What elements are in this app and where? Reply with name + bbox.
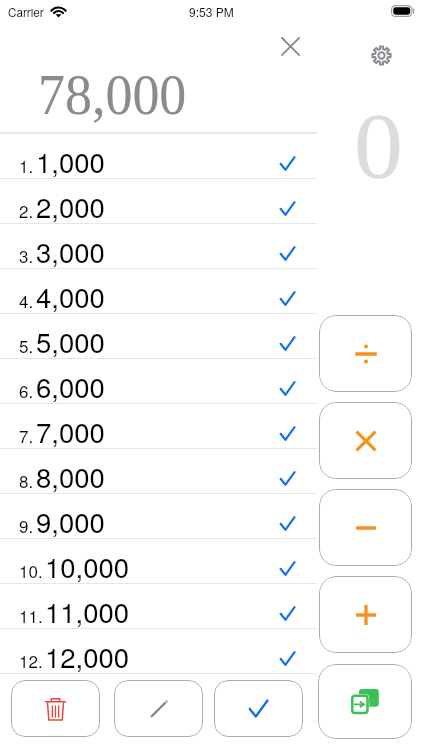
staticText: 0 [354, 93, 403, 197]
staticText: 5. [19, 333, 34, 357]
button[interactable]: Delete [11, 680, 100, 737]
staticText: 3,000 [36, 231, 105, 270]
staticText: 8,000 [36, 456, 105, 495]
button[interactable]: 8. [0, 449, 317, 494]
button[interactable]: 4. [0, 269, 317, 314]
button[interactable]: 5. [0, 314, 317, 359]
button[interactable]: Divide [319, 315, 412, 392]
staticText: 11,000 [45, 591, 130, 630]
staticText: 4,000 [36, 276, 105, 315]
button[interactable]: Close [272, 28, 308, 64]
staticText: 12,000 [45, 636, 130, 675]
button[interactable]: Settings [363, 37, 399, 73]
button[interactable]: Move [318, 664, 412, 739]
staticText: 3. [19, 243, 34, 267]
staticText: 9:53 PM [189, 3, 234, 20]
staticText: 8. [19, 468, 34, 492]
button[interactable]: Edit [114, 680, 203, 737]
staticText: 2,000 [36, 186, 105, 225]
button[interactable]: Multiply [319, 402, 412, 479]
button[interactable]: 7. [0, 404, 317, 449]
staticText: 2. [19, 198, 34, 222]
staticText: 6,000 [36, 366, 105, 405]
staticText: 6. [19, 378, 34, 402]
button[interactable]: Confirm [214, 680, 303, 737]
staticText: 1,000 [36, 141, 105, 180]
button[interactable]: 12. [0, 629, 317, 674]
staticText: Carrier [8, 4, 44, 21]
staticText: 4. [19, 288, 34, 312]
staticText: 11. [19, 603, 43, 627]
button[interactable]: 11. [0, 584, 317, 629]
button[interactable]: Add [319, 576, 412, 653]
staticText: 9,000 [36, 501, 105, 540]
button[interactable]: 2. [0, 179, 317, 224]
button[interactable]: 1. [0, 134, 317, 179]
staticText: 5,000 [36, 321, 105, 360]
staticText: 1. [19, 153, 34, 177]
button[interactable]: 9. [0, 494, 317, 539]
staticText: 7,000 [36, 411, 105, 450]
button[interactable]: Subtract [319, 489, 412, 566]
button[interactable]: 6. [0, 359, 317, 404]
staticText: 10,000 [45, 546, 130, 585]
staticText: 7. [19, 423, 34, 447]
staticText: 10. [19, 558, 43, 582]
button[interactable]: 3. [0, 224, 317, 269]
staticText: 9. [19, 513, 34, 537]
staticText: 12. [19, 648, 43, 672]
staticText: 78,000 [38, 62, 187, 126]
button[interactable]: 10. [0, 539, 317, 584]
